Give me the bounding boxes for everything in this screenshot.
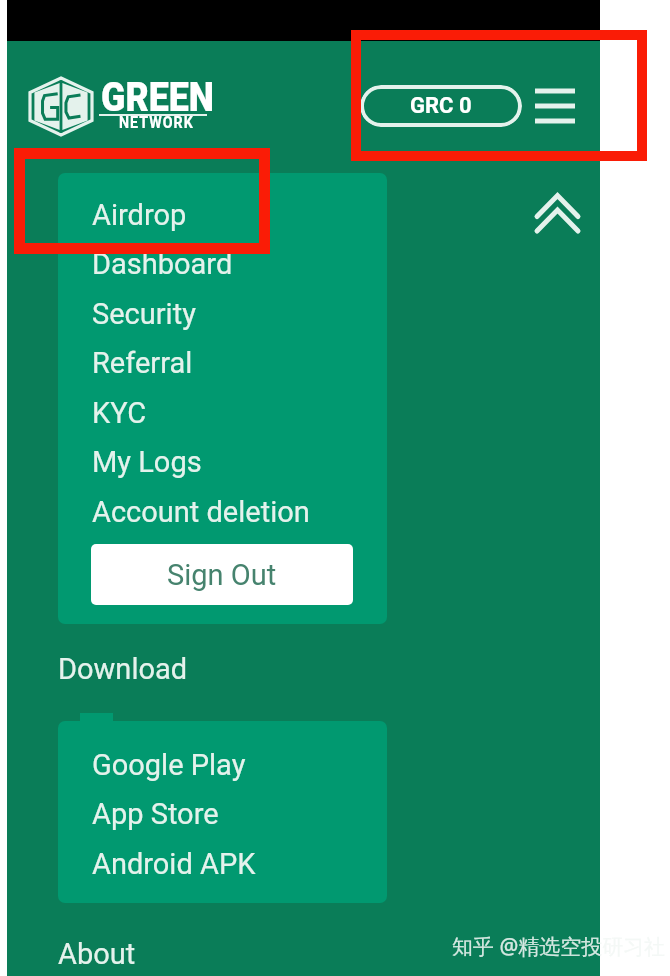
button[interactable]: Open menu [525,78,581,134]
button[interactable]: Referral [58,338,387,388]
staticText: Download [58,652,188,686]
button[interactable]: Download [58,647,188,691]
button[interactable]: Collapse [525,185,581,237]
button[interactable]: My Logs [58,437,387,487]
button[interactable]: Dashboard [58,239,387,289]
staticText: App Store [92,797,219,831]
button[interactable]: Airdrop [58,190,387,240]
staticText: KYC [92,396,147,430]
button[interactable]: Security [58,289,387,339]
button[interactable]: Account deletion [58,487,387,537]
staticText: 知乎 @精选空投研习社 [452,932,666,961]
staticText: Account deletion [92,495,310,529]
staticText: Google Play [92,748,246,782]
staticText: My Logs [92,445,202,479]
button[interactable]: App Store [58,789,387,839]
staticText: Sign Out [167,558,277,592]
button[interactable]: Google Play [58,740,387,790]
staticText: Security [92,297,196,331]
staticText: NETWORK [119,112,195,132]
staticText: Dashboard [92,247,233,281]
staticText: GRC 0 [410,93,472,119]
button[interactable]: GRC 0 [360,85,522,127]
staticText: Referral [92,346,193,380]
button[interactable]: Android APK [58,839,387,889]
button[interactable]: Sign Out [91,544,353,605]
button[interactable]: KYC [58,388,387,438]
staticText: GREEN [101,74,215,121]
staticText: Android APK [92,847,256,881]
staticText: About [58,937,136,971]
staticText: Airdrop [92,198,187,232]
button[interactable]: About [58,932,136,976]
